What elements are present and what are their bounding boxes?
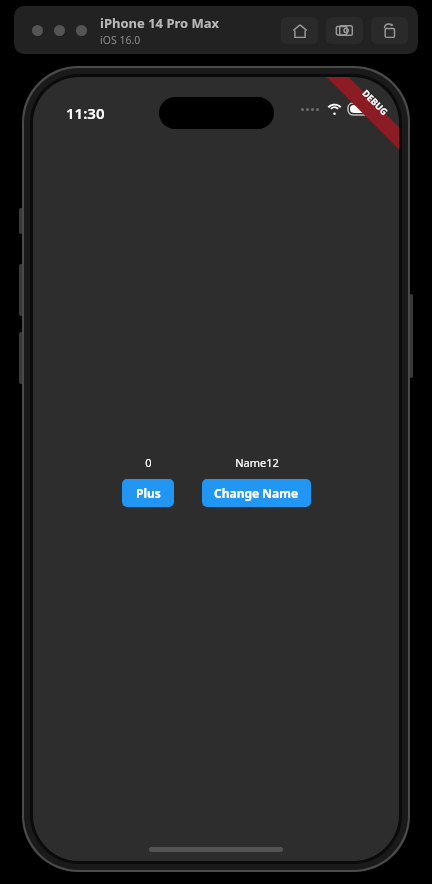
staticText: iOS 16.0 [100, 33, 141, 47]
button[interactable] [32, 25, 43, 36]
button[interactable]: Screenshot [326, 17, 363, 44]
staticText: iPhone 14 Pro Max [100, 14, 220, 32]
button[interactable]: Home [281, 17, 318, 44]
button[interactable]: Rotate [371, 17, 408, 44]
button[interactable] [76, 25, 87, 36]
staticText: Plus [136, 485, 161, 501]
button[interactable]: Change Name [202, 479, 311, 507]
staticText: Change Name [214, 485, 299, 501]
button[interactable]: Plus [122, 479, 174, 507]
staticText: Name12 [235, 455, 279, 470]
staticText: DEBUG [360, 87, 391, 117]
button[interactable] [54, 25, 65, 36]
staticText: 0 [145, 455, 152, 470]
staticText: 11:30 [66, 103, 105, 123]
